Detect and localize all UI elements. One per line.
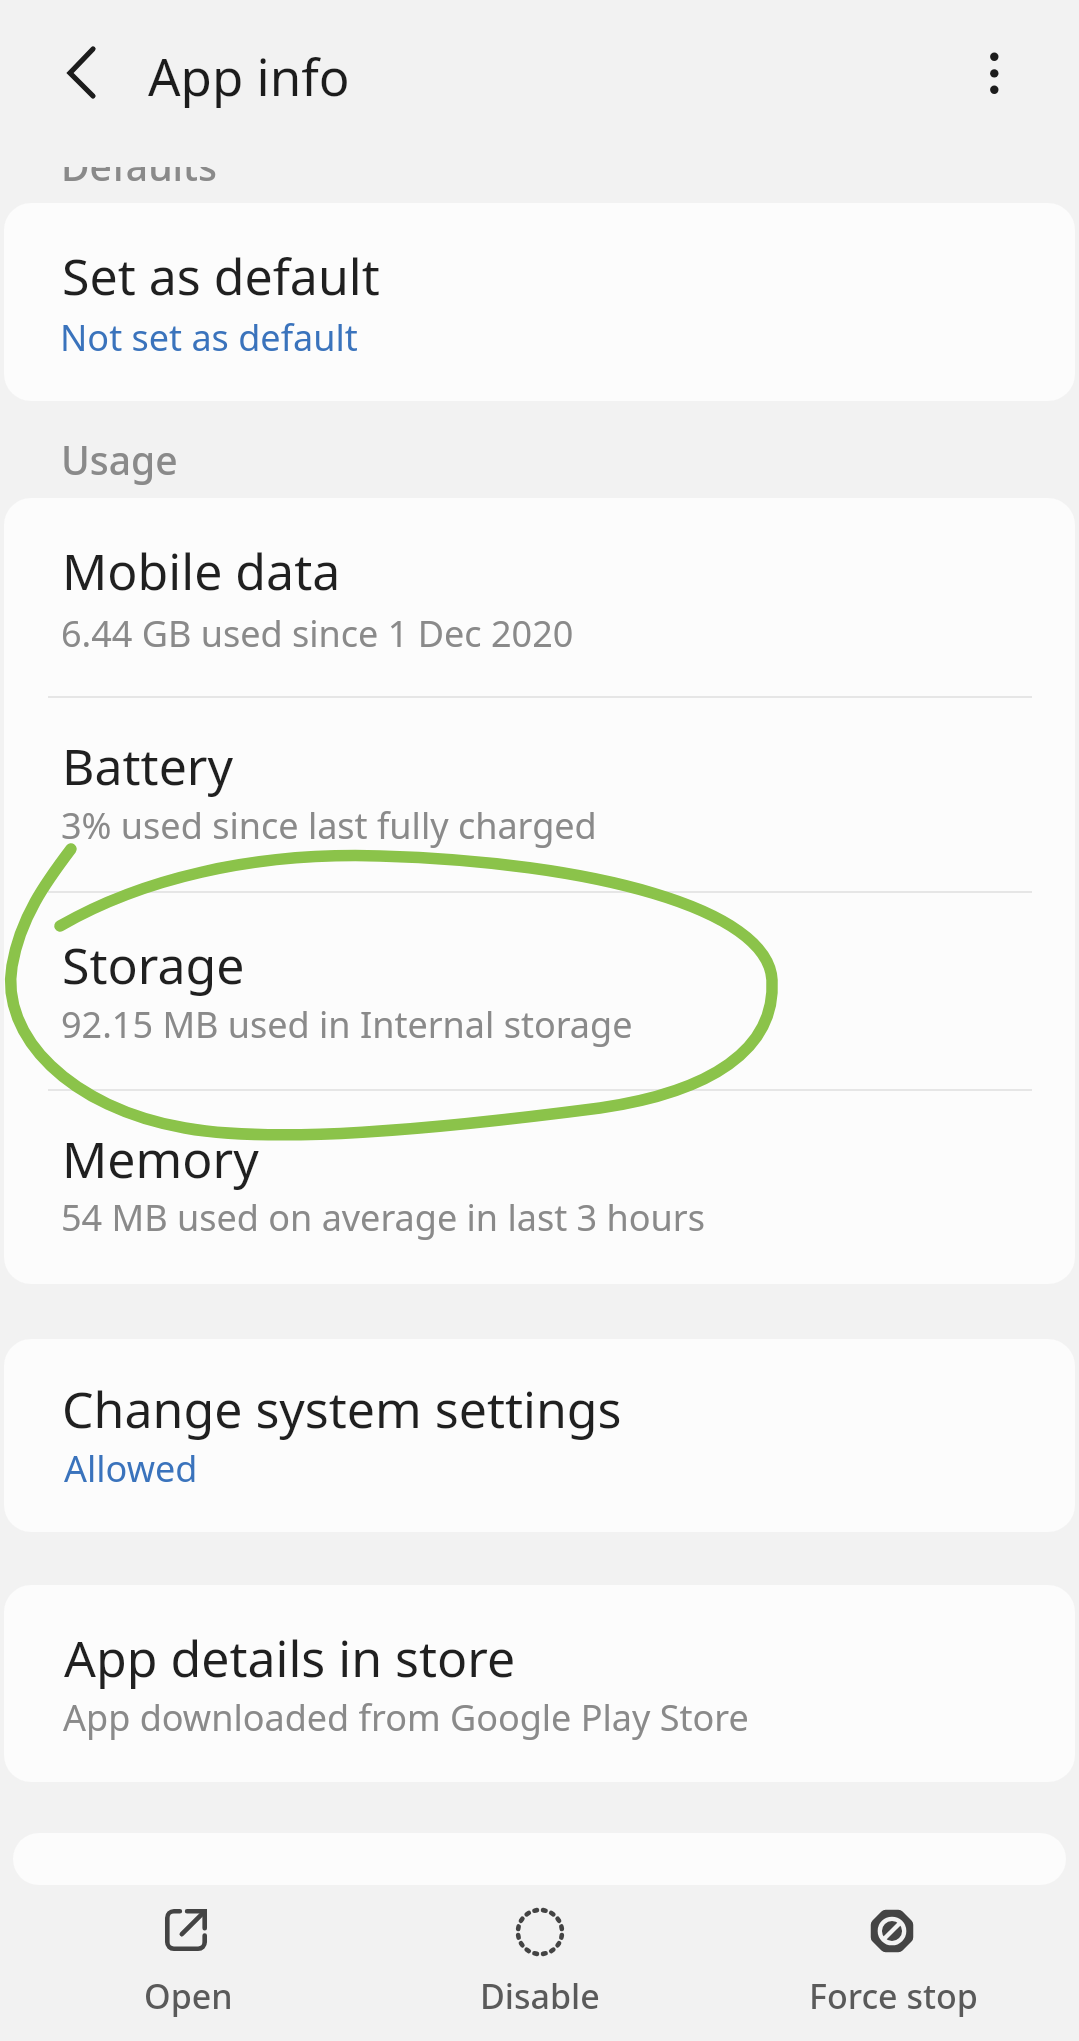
staticText: Mobile data [62,537,341,605]
button[interactable]: Navigate up [27,17,137,127]
staticText: Allowed [64,1444,198,1493]
staticText: Storage [62,931,245,999]
staticText: App details in store [64,1624,516,1692]
staticText: Usage [61,433,178,486]
staticText: Memory [62,1125,259,1193]
staticText: Change system settings [62,1375,622,1443]
staticText: Defaults [61,139,218,192]
staticText: Force stop [809,1973,978,2019]
staticText: App info [148,41,350,110]
button[interactable]: Mobile data [4,498,1075,697]
staticText: 3% used since last fully charged [61,801,597,850]
button[interactable]: Open [48,1886,328,2041]
staticText: 54 MB used on average in last 3 hours [61,1193,705,1242]
button[interactable]: Disable [400,1886,680,2041]
staticText: 6.44 GB used since 1 Dec 2020 [61,609,574,658]
button[interactable]: App details in store [4,1585,1075,1782]
button[interactable]: Set as default [4,203,1075,401]
staticText: 92.15 MB used in Internal storage [61,1000,633,1049]
button[interactable]: Battery [4,697,1075,891]
staticText: App downloaded from Google Play Store [63,1693,749,1742]
staticText: Disable [480,1973,600,2019]
button[interactable]: Storage [4,892,1075,1088]
button[interactable]: More options [939,18,1049,128]
button[interactable]: Memory [4,1090,1075,1284]
button[interactable]: Force stop [753,1886,1033,2041]
staticText: Not set as default [60,313,358,362]
button[interactable]: Change system settings [4,1339,1075,1532]
staticText: Battery [62,732,233,800]
staticText: Open [144,1973,233,2019]
staticText: Set as default [62,242,380,310]
